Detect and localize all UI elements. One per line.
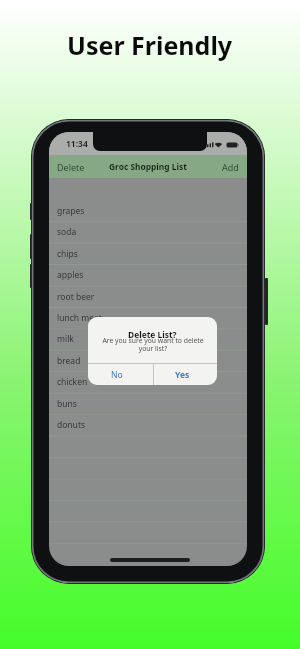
staticText: Are you sure you want to delete your lis… xyxy=(102,336,204,353)
staticText: Delete xyxy=(57,161,85,173)
button[interactable]: apples xyxy=(49,264,247,285)
staticText: User Friendly xyxy=(67,28,233,62)
staticText: Delete List? xyxy=(128,329,177,340)
button[interactable]: buns xyxy=(49,393,247,414)
staticText: grapes xyxy=(57,205,85,217)
staticText: No xyxy=(111,369,123,381)
button[interactable]: donuts xyxy=(49,414,247,435)
button[interactable]: chicken xyxy=(49,371,247,392)
button[interactable]: soda xyxy=(49,221,247,242)
staticText: buns xyxy=(57,398,77,410)
button[interactable]: No xyxy=(88,364,153,385)
staticText: Groc Shopping List xyxy=(109,161,187,172)
button[interactable]: grapes xyxy=(49,200,247,221)
staticText: soda xyxy=(57,226,77,238)
staticText: apples xyxy=(57,269,84,281)
button[interactable]: bread xyxy=(49,350,247,371)
staticText: 11:34 xyxy=(66,138,88,150)
staticText: chips xyxy=(57,248,78,260)
staticText: lunch meat xyxy=(57,312,102,324)
staticText: Add xyxy=(222,161,239,173)
button[interactable]: milk xyxy=(49,328,247,349)
button[interactable]: Add xyxy=(222,161,239,173)
button[interactable]: Yes xyxy=(153,364,217,385)
button[interactable]: lunch meat xyxy=(49,307,247,328)
staticText: Yes xyxy=(175,369,190,381)
staticText: donuts xyxy=(57,419,86,431)
staticText: root beer xyxy=(57,291,95,303)
button[interactable]: chips xyxy=(49,243,247,264)
button[interactable]: root beer xyxy=(49,286,247,307)
staticText: bread xyxy=(57,355,81,367)
staticText: milk xyxy=(57,333,74,345)
button[interactable]: Delete xyxy=(57,161,85,173)
staticText: chicken xyxy=(57,376,88,388)
